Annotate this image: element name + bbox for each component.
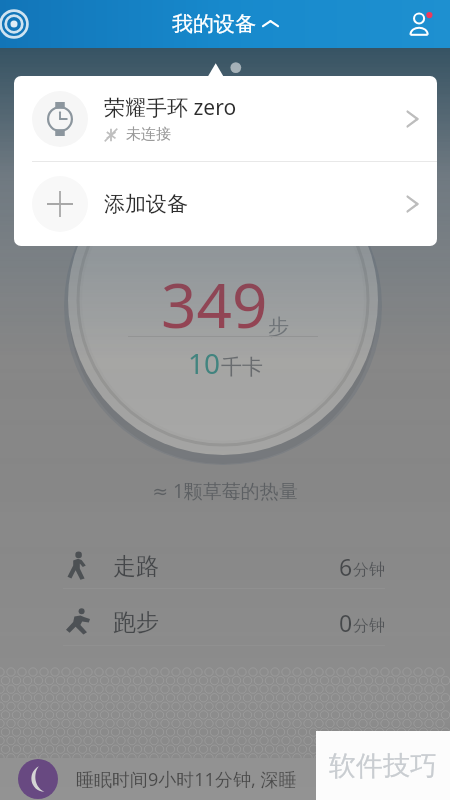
staticText: 软件技巧 xyxy=(329,749,437,783)
staticText: 0 xyxy=(339,607,353,638)
button[interactable]: 走路 xyxy=(63,544,385,588)
staticText: 荣耀手环 zero xyxy=(104,93,237,122)
staticText: 睡眠时间9小时11分钟, 深睡 xyxy=(76,767,297,792)
staticText: 未连接 xyxy=(126,125,171,144)
button[interactable]: 添加设备 xyxy=(14,162,437,246)
button[interactable]: 我的设备 xyxy=(172,11,278,37)
button[interactable]: Account xyxy=(400,3,442,45)
button[interactable]: 荣耀手环 zero xyxy=(14,76,437,161)
staticText: 10 xyxy=(188,344,221,382)
staticText: 步 xyxy=(268,314,289,340)
staticText: 跑步 xyxy=(113,608,159,637)
button[interactable]: Huawei Health xyxy=(0,0,38,48)
staticText: 349 xyxy=(161,262,268,346)
staticText: 分钟 xyxy=(353,560,385,580)
button[interactable]: 跑步 xyxy=(63,600,385,644)
staticText: 千卡 xyxy=(221,354,263,380)
staticText: 6 xyxy=(339,551,353,582)
staticText: 走路 xyxy=(113,552,159,581)
staticText: 我的设备 xyxy=(172,11,256,37)
staticText: 分钟 xyxy=(353,616,385,636)
staticText: 添加设备 xyxy=(104,191,406,217)
staticText: ≈ 1颗草莓的热量 xyxy=(152,478,298,504)
button[interactable]: 睡眠时间9小时11分钟, 深睡 xyxy=(0,758,450,800)
